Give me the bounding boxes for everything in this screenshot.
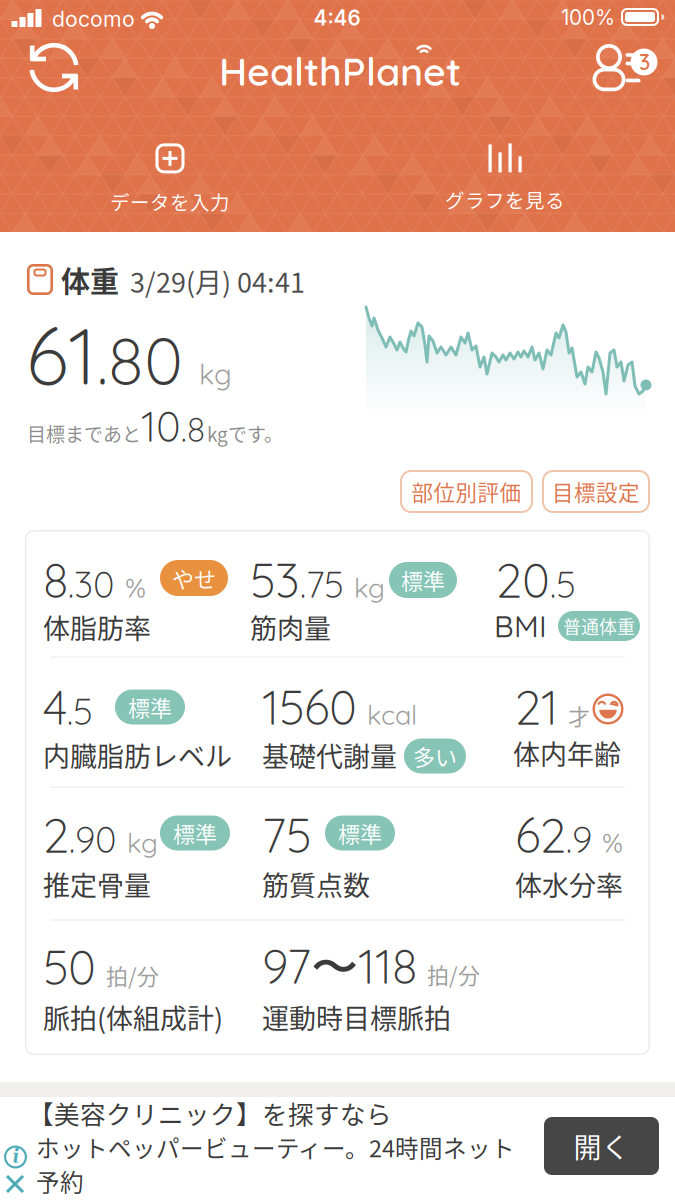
staticText: グラフを見る — [445, 185, 565, 214]
button[interactable]: お知らせ 3件 — [586, 38, 666, 98]
staticText: 3 — [639, 49, 650, 75]
button[interactable]: グラフを見る — [445, 143, 565, 214]
staticText: 拍/分 — [427, 958, 480, 990]
staticText: 目標設定 — [552, 476, 640, 507]
staticText: 推定骨量 — [43, 864, 151, 904]
staticText: 筋肉量 — [250, 607, 331, 647]
button[interactable]: 広告を閉じる — [7, 1176, 23, 1192]
staticText: 20 — [496, 550, 550, 610]
staticText: % — [602, 826, 623, 859]
staticText: .80 — [97, 318, 183, 401]
staticText: 97〜118 — [262, 936, 417, 998]
staticText: 10 — [141, 400, 181, 452]
staticText: 【美容クリニック】を探すなら — [28, 1094, 392, 1131]
staticText: 標準 — [128, 691, 172, 723]
staticText: .5 — [550, 561, 576, 607]
staticText: docomo — [52, 6, 135, 32]
staticText: 標準 — [401, 564, 445, 596]
staticText: 開く — [573, 1126, 629, 1166]
staticText: 内臓脂肪レベル — [43, 735, 232, 775]
staticText: 8 — [43, 550, 68, 610]
staticText: kg — [199, 356, 232, 391]
staticText: 4:46 — [313, 5, 360, 30]
staticText: データを入力 — [110, 187, 230, 216]
staticText: .90 — [69, 816, 117, 862]
button[interactable]: 目標設定 — [542, 470, 650, 513]
staticText: 4 — [43, 677, 67, 737]
staticText: 体水分率 — [515, 864, 623, 904]
staticText: .5 — [67, 688, 93, 734]
staticText: i — [12, 1144, 19, 1170]
staticText: .30 — [68, 561, 115, 607]
staticText: 部位別評価 — [411, 476, 521, 507]
staticText: 標準 — [173, 817, 217, 849]
staticText: 予約 — [36, 1164, 84, 1198]
staticText: 拍/分 — [106, 959, 159, 991]
staticText: 62 — [515, 805, 566, 865]
staticText: HealthPlanet — [219, 46, 461, 96]
button[interactable]: 部位別評価 — [400, 470, 533, 513]
staticText: 基礎代謝量 — [262, 735, 397, 775]
staticText: 75 — [262, 805, 311, 865]
staticText: 50 — [43, 937, 96, 997]
staticText: 目標まであと — [27, 420, 141, 447]
staticText: 体脂肪率 — [43, 607, 151, 647]
staticText: 体内年齢 — [513, 733, 621, 773]
staticText: 53 — [250, 550, 300, 610]
staticText: 脈拍(体組成計) — [43, 997, 223, 1037]
staticText: 3/29(月) 04:41 — [130, 261, 305, 301]
staticText: 61 — [26, 306, 97, 404]
staticText: ホットペッパービューティー。24時間ネット — [36, 1130, 515, 1164]
button[interactable]: 広告情報 — [4, 1145, 27, 1168]
staticText: .9 — [566, 816, 592, 862]
button[interactable]: 開く — [544, 1117, 659, 1175]
staticText: 21 — [515, 677, 558, 737]
staticText: 100% — [561, 5, 615, 30]
staticText: kg — [127, 826, 158, 859]
staticText: 普通体重 — [563, 613, 635, 639]
staticText: kgです。 — [207, 420, 283, 447]
staticText: 体重 — [61, 259, 119, 301]
button[interactable]: データを入力 — [110, 143, 230, 216]
staticText: 1560 — [262, 677, 357, 737]
staticText: 才 — [568, 699, 590, 731]
staticText: % — [125, 571, 146, 604]
staticText: .75 — [300, 561, 344, 607]
button[interactable]: 更新 — [23, 37, 83, 97]
staticText: 2 — [43, 805, 69, 865]
staticText: 多い — [413, 740, 457, 772]
staticText: 筋質点数 — [262, 864, 370, 904]
staticText: やせ — [172, 562, 216, 594]
staticText: BMI — [494, 607, 547, 645]
staticText: .8 — [181, 408, 205, 450]
staticText: 運動時目標脈拍 — [262, 997, 451, 1037]
staticText: 標準 — [338, 817, 382, 849]
staticText: kcal — [367, 698, 417, 731]
staticText: kg — [354, 571, 385, 604]
